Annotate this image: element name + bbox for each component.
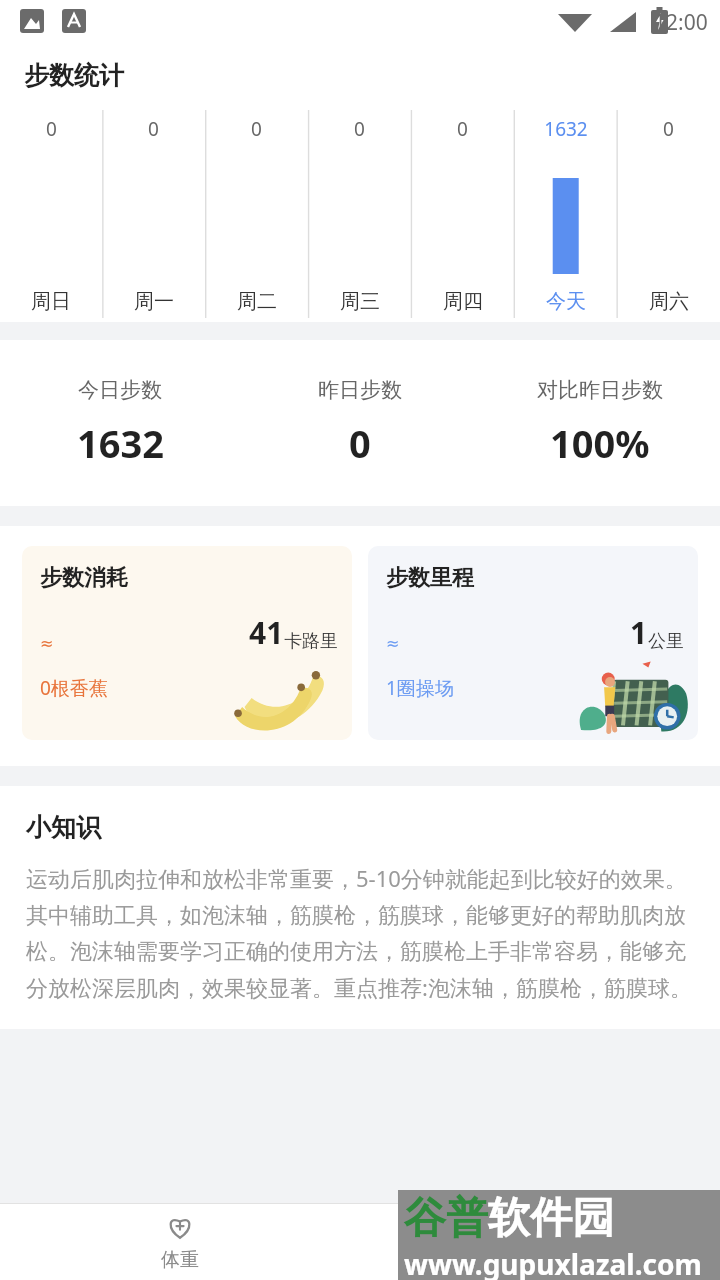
button[interactable]: 体重: [0, 1204, 360, 1280]
staticText: 1632: [544, 116, 588, 142]
staticText: ≈: [386, 634, 400, 653]
staticText: 周六: [649, 289, 689, 314]
button[interactable]: 今日步数: [0, 340, 240, 506]
staticText: 公里: [648, 630, 684, 653]
staticText: 软件园: [488, 1192, 614, 1245]
staticText: 0: [349, 417, 371, 469]
staticText: 小知识: [26, 812, 101, 843]
button[interactable]: 1632: [514, 106, 617, 322]
staticText: 谷普: [404, 1192, 488, 1245]
staticText: 运动后肌肉拉伸和放松非常重要，5-10分钟就能起到比较好的效果。其中辅助工具，如…: [26, 863, 694, 1003]
staticText: www.gupuxlazal.com: [404, 1245, 702, 1280]
button[interactable]: 0: [0, 106, 102, 322]
button[interactable]: 0: [411, 106, 514, 322]
staticText: 周日: [31, 289, 71, 314]
button[interactable]: 对比昨日步数: [480, 340, 720, 506]
staticText: 运动: [521, 1248, 559, 1272]
staticText: 0: [148, 116, 159, 142]
button[interactable]: 昨日步数: [240, 340, 480, 506]
staticText: 今天: [546, 289, 586, 314]
staticText: 卡路里: [284, 630, 338, 653]
staticText: 步数统计: [24, 60, 124, 91]
staticText: ≈: [40, 634, 54, 653]
staticText: 体重: [161, 1248, 199, 1272]
staticText: 0: [457, 116, 468, 142]
button[interactable]: 步数里程: [368, 546, 698, 740]
button[interactable]: 0: [308, 106, 411, 322]
staticText: 今日步数: [78, 377, 162, 403]
staticText: 1: [630, 612, 648, 653]
button[interactable]: 0: [617, 106, 720, 322]
staticText: 41: [249, 612, 284, 653]
staticText: 0: [46, 116, 57, 142]
staticText: 0: [354, 116, 365, 142]
staticText: 对比昨日步数: [537, 377, 663, 403]
button[interactable]: 步数消耗: [22, 546, 352, 740]
staticText: 步数消耗: [40, 564, 128, 592]
staticText: 周一: [134, 289, 174, 314]
staticText: 昨日步数: [318, 377, 402, 403]
staticText: 0: [251, 116, 262, 142]
staticText: 1632: [77, 417, 164, 469]
staticText: 0根香蕉: [40, 675, 108, 701]
staticText: 周二: [237, 289, 277, 314]
button[interactable]: 0: [102, 106, 205, 322]
staticText: 12:00: [654, 8, 708, 37]
staticText: 0: [663, 116, 674, 142]
staticText: 周三: [340, 289, 380, 314]
staticText: 100%: [550, 417, 650, 469]
staticText: 周四: [443, 289, 483, 314]
staticText: 步数里程: [386, 564, 474, 592]
button[interactable]: 运动: [360, 1204, 720, 1280]
button[interactable]: 0: [205, 106, 308, 322]
staticText: 1圈操场: [386, 675, 454, 701]
